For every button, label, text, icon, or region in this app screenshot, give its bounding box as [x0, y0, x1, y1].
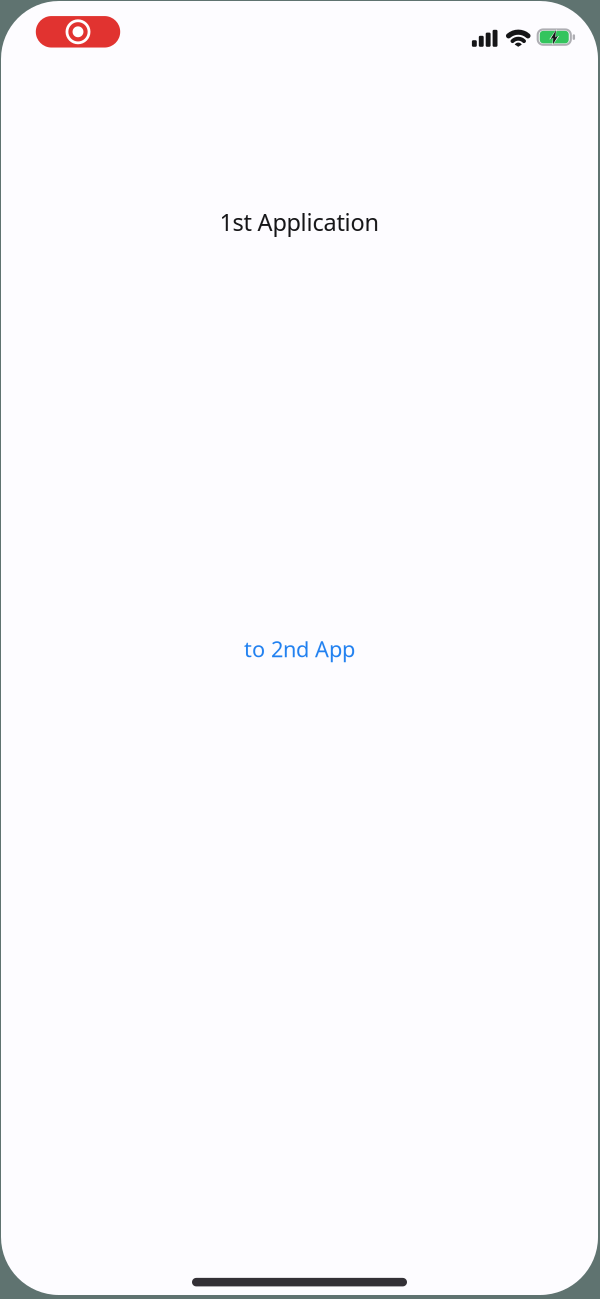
button[interactable]: to 2nd App	[244, 634, 355, 664]
staticText: to 2nd App	[244, 634, 355, 664]
staticText: 1st Application	[219, 206, 379, 238]
button[interactable]: Screen recording in progress	[36, 16, 120, 48]
